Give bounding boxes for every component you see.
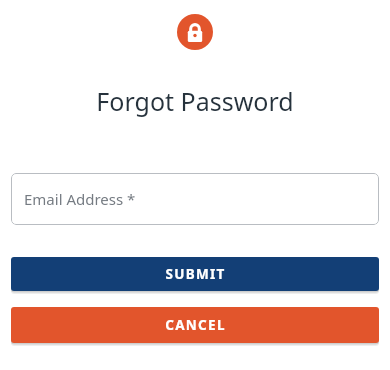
staticText: Email Address * — [24, 189, 136, 209]
button[interactable]: Email Address * — [11, 173, 379, 225]
staticText: CANCEL — [165, 316, 226, 334]
button[interactable]: SUBMIT — [11, 257, 379, 291]
button[interactable]: CANCEL — [11, 307, 379, 343]
other: Locked account — [177, 14, 213, 50]
staticText: SUBMIT — [165, 265, 226, 283]
staticText: Forgot Password — [96, 84, 294, 118]
